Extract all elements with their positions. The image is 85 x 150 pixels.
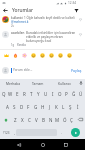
button[interactable]: H <box>39 100 46 113</box>
staticText: O <box>58 91 62 97</box>
staticText: U <box>44 91 48 97</box>
button[interactable]: Ç <box>68 113 75 126</box>
button[interactable]: Z <box>11 113 19 126</box>
staticText: Y <box>37 91 40 97</box>
button[interactable]: Ö <box>61 113 68 126</box>
button[interactable]: Paylaş <box>70 67 83 74</box>
button[interactable]: Merhaba <box>0 79 25 87</box>
button[interactable]: Emoji <box>65 51 74 60</box>
button[interactable]: G <box>32 100 39 113</box>
staticText: C <box>28 117 31 123</box>
staticText: 12:34 <box>68 1 77 5</box>
button[interactable]: M <box>54 113 61 126</box>
staticText: Kullanıcı <box>58 81 71 85</box>
staticText: ?123 <box>3 131 10 135</box>
staticText: D <box>20 104 24 110</box>
button[interactable]: Emoji <box>11 51 20 60</box>
button[interactable]: Like <box>77 32 83 37</box>
button[interactable]: Emoji <box>2 51 11 60</box>
staticText: P <box>65 91 68 97</box>
button[interactable]: acarbilen <box>0 31 85 47</box>
button[interactable]: A <box>4 100 11 113</box>
staticText: V <box>35 117 38 123</box>
staticText: 1 Öğle kahvaltı keyfi dedik ve kaliteli <box>24 16 75 20</box>
button[interactable]: Like <box>77 17 83 22</box>
button[interactable]: Ü <box>77 87 84 100</box>
button[interactable]: Voice input <box>77 79 85 87</box>
staticText: X <box>21 117 24 123</box>
button[interactable]: Recent apps <box>61 140 71 150</box>
button[interactable]: Back <box>1 6 10 15</box>
button[interactable]: P <box>63 87 70 100</box>
button[interactable]: C <box>26 113 33 126</box>
staticText: A <box>6 104 9 110</box>
staticText: Ç <box>70 117 73 123</box>
button[interactable]: Yanıtla <box>17 43 26 47</box>
button[interactable]: D <box>18 100 25 113</box>
staticText: İ <box>77 104 79 110</box>
button[interactable]: I <box>49 87 56 100</box>
button[interactable]: Ğ <box>70 87 77 100</box>
button[interactable]: J <box>46 100 53 113</box>
button[interactable]: Emoji <box>29 51 38 60</box>
staticText: Ğ <box>72 91 76 97</box>
button[interactable]: Sort <box>72 6 81 15</box>
button[interactable]: X <box>19 113 26 126</box>
staticText: K <box>55 104 58 110</box>
button[interactable]: S <box>11 100 18 113</box>
button[interactable]: B <box>40 113 47 126</box>
button[interactable]: U <box>42 87 49 100</box>
button[interactable]: Ş <box>67 100 74 113</box>
button[interactable]: İ <box>74 100 81 113</box>
button[interactable]: Kullanıcı <box>51 79 77 87</box>
button[interactable]: K <box>53 100 60 113</box>
button[interactable]: Home <box>38 140 48 150</box>
staticText: Ö <box>63 117 67 123</box>
button[interactable]: kullanici <box>0 16 85 28</box>
staticText: acarbilen <box>11 31 26 35</box>
staticText: T <box>30 91 33 97</box>
staticText: Yorumlar <box>12 7 34 14</box>
button[interactable]: V <box>33 113 40 126</box>
staticText: I <box>52 91 54 97</box>
button[interactable]: O <box>56 87 63 100</box>
button[interactable]: N <box>47 113 54 126</box>
staticText: H <box>41 104 45 110</box>
staticText: . <box>61 130 62 135</box>
staticText: J <box>49 104 51 110</box>
button[interactable]: Back <box>14 140 24 150</box>
staticText: Yorum ekle... <box>13 68 70 72</box>
button[interactable]: W <box>7 87 14 100</box>
staticText: Merhaba <box>6 81 20 85</box>
staticText: Q <box>2 91 6 97</box>
staticText: Ü <box>79 91 83 97</box>
staticText: , <box>14 130 15 135</box>
button[interactable]: F <box>25 100 32 113</box>
button[interactable]: ?123 <box>0 126 13 139</box>
staticText: L <box>62 104 65 110</box>
staticText: B <box>42 117 45 123</box>
staticText: 2s <box>11 24 14 28</box>
button[interactable]: Shift <box>0 113 11 126</box>
staticText: E <box>16 91 19 97</box>
button[interactable]: Send <box>71 128 80 137</box>
button[interactable]: T <box>28 87 35 100</box>
staticText: G <box>34 104 38 110</box>
button[interactable]: L <box>60 100 67 113</box>
button[interactable]: Emoji <box>38 51 47 60</box>
button[interactable]: Emoji <box>56 51 65 60</box>
staticText: kullanici <box>11 16 24 20</box>
button[interactable]: Backspace <box>75 113 85 126</box>
button[interactable]: Emoji <box>47 51 56 60</box>
button[interactable]: Q <box>1 87 7 100</box>
button[interactable]: Emoji <box>20 51 29 60</box>
button[interactable]: R <box>21 87 28 100</box>
staticText: S <box>13 104 16 110</box>
staticText: W <box>8 91 13 97</box>
button[interactable]: , <box>13 126 16 139</box>
button[interactable]: E <box>14 87 21 100</box>
button[interactable]: Tamam <box>25 79 51 87</box>
button[interactable]: Y <box>35 87 42 100</box>
